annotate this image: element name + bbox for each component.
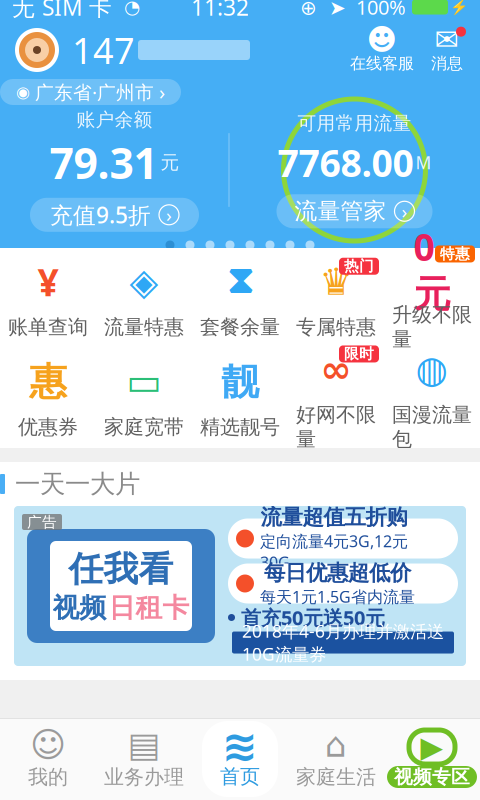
staticText: 11:32 [191, 0, 249, 22]
button[interactable]: ♛ [288, 250, 384, 346]
staticText: ∞ [320, 348, 351, 391]
staticText: › [401, 199, 407, 224]
button[interactable]: ▶ [384, 719, 480, 799]
staticText: 流量特惠 [104, 315, 184, 339]
staticText: 一天一大片 [15, 468, 140, 499]
staticText: 充值9.5折 [50, 200, 151, 230]
staticText: 广东省·广州市 [35, 80, 154, 104]
button[interactable]: ◈ [96, 250, 192, 346]
staticText: 每天1元1.5G省内流量 [260, 586, 415, 607]
staticText: 2018年4-6月办理并激活送10G流量券 [242, 619, 444, 665]
staticText: 账户余额 [76, 108, 152, 131]
button[interactable]: 流量管家 [276, 194, 432, 228]
staticText: 业务办理 [104, 765, 184, 789]
staticText: 热门 [344, 257, 374, 275]
staticText: ≋ [222, 722, 258, 770]
button[interactable]: 惠 [0, 350, 96, 446]
staticText: 无 SIM 卡 [12, 0, 112, 22]
button[interactable]: ≋ [192, 719, 288, 799]
staticText: 家庭生活 [296, 765, 376, 789]
button[interactable]: 在线客服 [350, 27, 414, 73]
button[interactable]: 消息 [428, 27, 466, 73]
staticText: 视频 [52, 591, 106, 624]
staticText: 套餐余量 [200, 315, 280, 339]
staticText: › [166, 202, 172, 227]
staticText: ⚡ [450, 0, 468, 15]
staticText: 任我看 [68, 548, 173, 590]
staticText: 专属特惠 [296, 315, 376, 339]
staticText: 定向流量4元3G,12元30G [260, 530, 408, 573]
staticText: 7768.00 [277, 138, 413, 187]
staticText: 147 [72, 26, 135, 74]
staticText: › [159, 79, 165, 105]
button[interactable]: 任我看 [14, 506, 466, 666]
staticText: ✉ [434, 23, 459, 56]
button[interactable]: ⌂ [288, 719, 384, 799]
staticText: 流量超值五折购 [260, 504, 407, 530]
staticText: ☺ [30, 725, 66, 764]
button[interactable]: 充值9.5折 [30, 198, 199, 232]
staticText: ◔ [112, 0, 140, 18]
staticText: 日租卡 [108, 591, 189, 624]
staticText: 特惠 [440, 245, 470, 263]
staticText: ⊕ ➤ 100% [300, 0, 406, 20]
staticText: 好网不限量 [296, 402, 376, 451]
staticText: 精选靓号 [200, 415, 280, 439]
button[interactable]: ▭ [96, 350, 192, 446]
staticText: 消息 [431, 54, 463, 73]
staticText: 我的 [28, 765, 68, 789]
staticText: 升级不限量 [392, 302, 472, 351]
staticText: ▤ [127, 725, 160, 764]
button[interactable]: ∞ [288, 350, 384, 446]
staticText: 首页 [220, 764, 260, 789]
staticText: ♛ [319, 260, 352, 303]
staticText: 视频专区 [394, 765, 470, 788]
button[interactable]: ◍ [384, 350, 480, 446]
button[interactable]: ⧗ [192, 250, 288, 346]
staticText: 元 [160, 151, 179, 174]
staticText: 家庭宽带 [104, 415, 184, 439]
staticText: 国漫流量包 [392, 402, 472, 451]
button[interactable]: 0元 [384, 250, 480, 346]
staticText: ¥ [37, 257, 58, 306]
button[interactable]: ▤ [96, 719, 192, 799]
staticText: ◍ [415, 348, 448, 391]
staticText: ◈ [129, 260, 158, 303]
staticText: ◉ [16, 83, 30, 101]
staticText: M [415, 151, 431, 174]
button[interactable]: ¥ [0, 250, 96, 346]
staticText: 账单查询 [8, 315, 88, 339]
button[interactable]: 靓 [192, 350, 288, 446]
staticText: 靓 [221, 359, 258, 405]
button[interactable]: ☺ [0, 719, 96, 799]
staticText: 每日优惠超低价 [264, 560, 411, 586]
staticText: 广告 [27, 513, 57, 531]
staticText: 首充50元送50元 [241, 604, 385, 631]
staticText: 惠 [29, 359, 66, 405]
staticText: 限时 [344, 345, 374, 363]
staticText: ☻ [366, 23, 397, 56]
staticText: 流量管家 [294, 197, 386, 225]
staticText: 优惠券 [18, 415, 78, 439]
staticText: ⌂ [325, 725, 347, 764]
staticText: 0元 [413, 222, 450, 317]
staticText: 可用常用流量 [297, 112, 411, 135]
staticText: 79.31 [49, 134, 157, 191]
staticText: ▭ [126, 360, 161, 403]
staticText: 在线客服 [350, 54, 414, 73]
staticText: ⧗ [227, 263, 253, 300]
staticText: ▶ [420, 730, 443, 764]
button[interactable]: ◉ [0, 79, 181, 105]
